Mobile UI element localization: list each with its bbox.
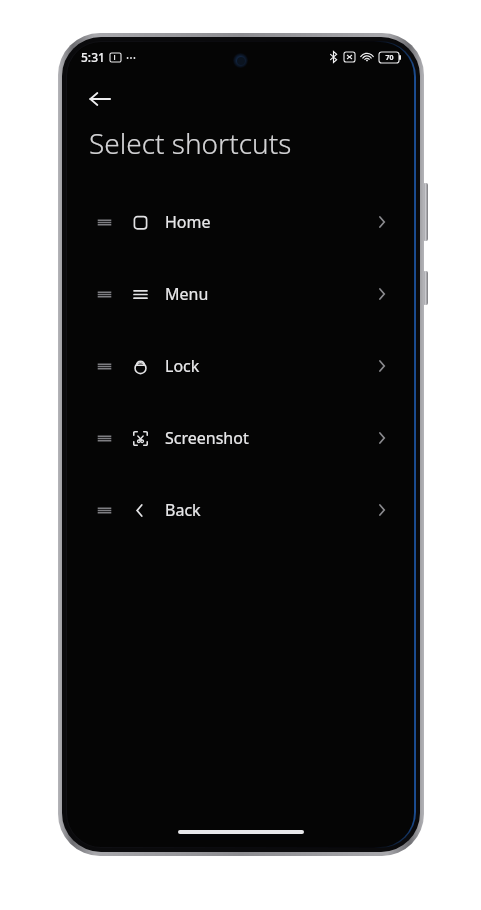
staticText: Screenshot [165, 427, 249, 449]
button[interactable]: Open Menu [364, 277, 398, 311]
button[interactable]: Reorder Home [67, 186, 414, 258]
button[interactable]: Open Back [364, 493, 398, 527]
button[interactable]: Reorder Home [89, 207, 119, 237]
staticText: Lock [165, 355, 200, 377]
button[interactable]: Reorder Lock [89, 351, 119, 381]
button[interactable]: Reorder Lock [67, 330, 414, 402]
button[interactable]: Open Screenshot [364, 421, 398, 455]
button[interactable]: Reorder Screenshot [89, 423, 119, 453]
staticText: Menu [165, 283, 209, 305]
staticText: 70 [385, 53, 394, 63]
staticText: Home [165, 211, 211, 233]
staticText: Back [165, 499, 201, 521]
button[interactable]: Reorder Screenshot [67, 402, 414, 474]
button[interactable]: Reorder Back [89, 495, 119, 525]
button[interactable]: Reorder Menu [89, 279, 119, 309]
button[interactable]: Reorder Menu [67, 258, 414, 330]
staticText: Select shortcuts [89, 124, 292, 162]
button[interactable]: Reorder Back [67, 474, 414, 546]
staticText: 5:31 [81, 49, 105, 65]
button[interactable]: Open Lock [364, 349, 398, 383]
button[interactable]: Back [79, 78, 121, 120]
button[interactable]: Open Home [364, 205, 398, 239]
